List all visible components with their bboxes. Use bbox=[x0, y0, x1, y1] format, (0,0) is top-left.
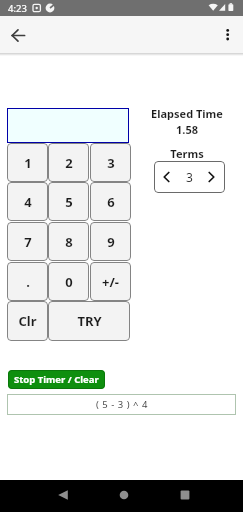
staticText: TRY bbox=[77, 312, 102, 330]
staticText: 5 bbox=[65, 193, 73, 211]
button[interactable]: +/- bbox=[90, 262, 131, 301]
button[interactable] bbox=[215, 22, 241, 49]
button[interactable]: 0 bbox=[48, 262, 89, 301]
staticText: Terms bbox=[170, 146, 204, 160]
button[interactable]: TRY bbox=[48, 301, 130, 341]
button[interactable] bbox=[93, 480, 154, 510]
staticText: 1.58 bbox=[176, 122, 198, 136]
button[interactable] bbox=[154, 480, 215, 510]
button[interactable]: 1 bbox=[7, 143, 48, 182]
button[interactable] bbox=[7, 108, 129, 143]
staticText: ( 5 - 3 ) ^ 4 bbox=[96, 398, 148, 411]
staticText: 3 bbox=[107, 154, 115, 172]
button[interactable]: 9 bbox=[90, 222, 131, 261]
staticText: 0 bbox=[65, 273, 73, 291]
staticText: 6 bbox=[107, 193, 115, 211]
staticText: 4 bbox=[24, 193, 32, 211]
staticText: 9 bbox=[107, 233, 115, 251]
staticText: +/- bbox=[102, 273, 119, 291]
button[interactable]: . bbox=[7, 262, 48, 301]
button[interactable] bbox=[159, 170, 174, 184]
button[interactable]: 6 bbox=[90, 182, 131, 221]
staticText: 3 bbox=[186, 169, 193, 185]
button[interactable]: 3 bbox=[90, 143, 131, 182]
button[interactable]: 7 bbox=[7, 222, 48, 261]
button[interactable] bbox=[6, 23, 31, 48]
button[interactable]: 4 bbox=[7, 182, 48, 221]
button[interactable]: ( 5 - 3 ) ^ 4 bbox=[7, 394, 236, 415]
staticText: 4:23 bbox=[8, 2, 27, 15]
staticText: 1 bbox=[24, 154, 32, 172]
staticText: 7 bbox=[24, 233, 32, 251]
button[interactable] bbox=[204, 170, 219, 184]
button[interactable]: Stop Timer / Clear bbox=[8, 370, 105, 389]
staticText: 2 bbox=[65, 154, 73, 172]
button[interactable]: Clr bbox=[7, 301, 48, 341]
staticText: Stop Timer / Clear bbox=[14, 373, 99, 386]
staticText: . bbox=[26, 273, 30, 291]
button[interactable]: 2 bbox=[48, 143, 89, 182]
button[interactable]: 8 bbox=[48, 222, 89, 261]
staticText: Clr bbox=[18, 312, 37, 330]
button[interactable]: 5 bbox=[48, 182, 89, 221]
staticText: Elapsed Time bbox=[151, 106, 223, 120]
button[interactable] bbox=[33, 480, 93, 510]
staticText: 8 bbox=[65, 233, 73, 251]
